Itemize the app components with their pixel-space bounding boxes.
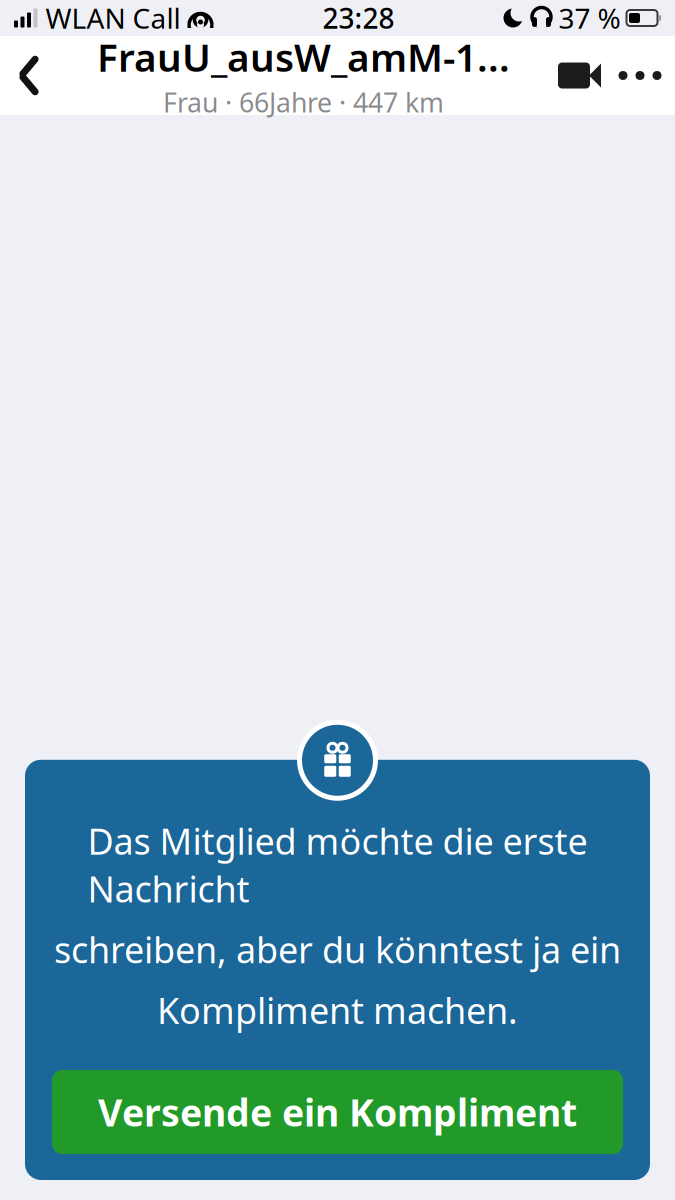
staticText: Versende ein Kompliment — [98, 1087, 577, 1137]
staticText: WLAN Call — [45, 0, 180, 37]
button[interactable]: Video call — [551, 50, 609, 100]
staticText: 37 % — [558, 0, 620, 37]
staticText: Das Mitglied möchte die erste Nachricht — [87, 817, 587, 912]
staticText: Frau · 66Jahre · 447 km — [163, 84, 444, 120]
button[interactable]: Versende ein Kompliment — [52, 1070, 623, 1154]
staticText: 23:28 — [322, 0, 394, 37]
staticText: schreiben, aber du könntest ja ein — [54, 925, 621, 973]
button[interactable]: Back — [2, 46, 56, 104]
button[interactable]: More options — [609, 50, 671, 100]
staticText: FrauU_ausW_amM-1... — [97, 31, 510, 82]
staticText: Kompliment machen. — [157, 986, 518, 1034]
